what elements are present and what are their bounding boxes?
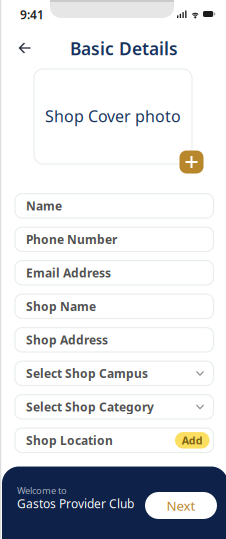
- staticText: Shop Address: [26, 332, 108, 348]
- staticText: Shop Cover photo: [45, 105, 181, 127]
- button[interactable]: Select Shop Category: [15, 395, 213, 419]
- staticText: Welcome to: [17, 484, 67, 497]
- button[interactable]: Shop Name: [15, 294, 213, 318]
- button[interactable]: Name: [15, 194, 213, 218]
- button[interactable]: Add cover photo: [179, 150, 203, 173]
- button[interactable]: Shop Address: [15, 328, 213, 352]
- staticText: Basic Details: [70, 37, 178, 60]
- staticText: Shop Name: [26, 298, 96, 314]
- button[interactable]: Phone Number: [15, 227, 213, 251]
- staticText: Shop Location: [26, 432, 113, 448]
- staticText: Add: [182, 433, 203, 447]
- button[interactable]: Select Shop Campus: [15, 361, 213, 385]
- staticText: Phone Number: [26, 231, 117, 247]
- staticText: Select Shop Category: [26, 399, 154, 415]
- staticText: Select Shop Campus: [26, 365, 148, 381]
- button[interactable]: Shop Location: [15, 428, 213, 452]
- button[interactable]: Next: [145, 492, 217, 519]
- button[interactable]: Back: [11, 35, 39, 61]
- staticText: Next: [166, 497, 195, 514]
- staticText: 9:41: [20, 6, 44, 22]
- staticText: Gastos Provider Club: [17, 495, 134, 511]
- staticText: Name: [26, 198, 62, 214]
- staticText: Email Address: [26, 265, 111, 281]
- button[interactable]: Email Address: [15, 261, 213, 285]
